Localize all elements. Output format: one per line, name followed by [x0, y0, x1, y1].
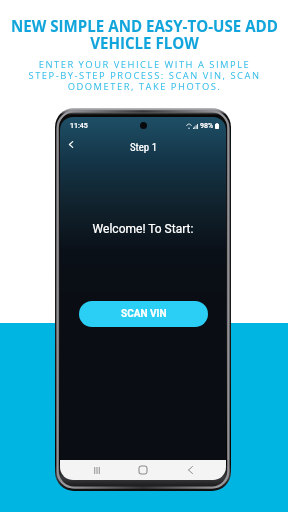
staticText: Welcome! To Start: [60, 222, 226, 236]
button[interactable]: Back [180, 460, 200, 480]
button[interactable]: Back [64, 137, 78, 151]
staticText: NEW SIMPLE AND EASY-TO-USE ADD VEHICLE F… [11, 16, 278, 53]
staticText: 11:45 [70, 122, 88, 130]
button[interactable]: Home [133, 460, 153, 480]
staticText: SCAN VIN [121, 308, 167, 320]
button[interactable]: SCAN VIN [79, 301, 208, 327]
staticText: Step 1 [130, 141, 157, 154]
button[interactable]: Recent apps [87, 460, 107, 480]
staticText: ENTER YOUR VEHICLE WITH A SIMPLE STEP-BY… [28, 58, 261, 93]
staticText: 98% [200, 122, 214, 130]
